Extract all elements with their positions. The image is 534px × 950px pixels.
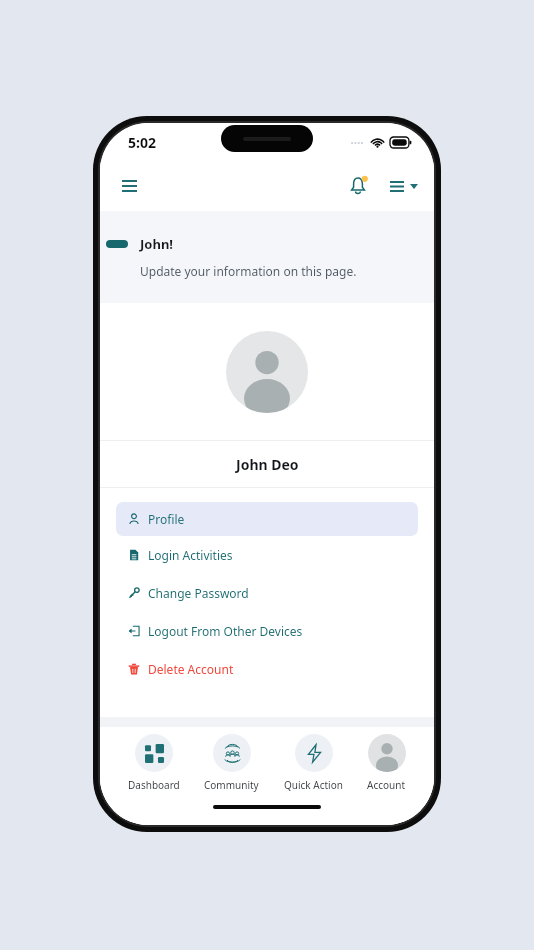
staticText: Account	[367, 778, 406, 792]
staticText: Update your information on this page.	[140, 263, 357, 279]
button[interactable]: More options	[388, 175, 420, 198]
button[interactable]: Open navigation menu	[112, 169, 146, 203]
staticText: John!	[140, 235, 173, 253]
staticText: Quick Action	[284, 778, 343, 792]
staticText: Dashboard	[128, 778, 180, 792]
staticText: Profile	[148, 511, 185, 527]
staticText: Change Password	[148, 585, 249, 601]
button[interactable]: Quick Action	[280, 734, 347, 792]
staticText: Logout From Other Devices	[148, 623, 303, 639]
button[interactable]: Community	[200, 734, 263, 792]
staticText: John Deo	[236, 455, 299, 474]
staticText: Community	[204, 778, 259, 792]
button[interactable]: Dashboard	[124, 734, 184, 792]
button[interactable]: Account	[363, 734, 410, 792]
button[interactable]: Change Password	[100, 574, 434, 612]
button[interactable]: Logout From Other Devices	[100, 612, 434, 650]
button[interactable]: Profile	[116, 502, 418, 536]
button[interactable]: Login Activities	[100, 536, 434, 574]
staticText: 5:02	[128, 133, 156, 152]
button[interactable]: Delete Account	[100, 650, 434, 688]
staticText: Login Activities	[148, 547, 233, 563]
button[interactable]: Notifications	[342, 170, 374, 202]
staticText: Delete Account	[148, 661, 234, 677]
